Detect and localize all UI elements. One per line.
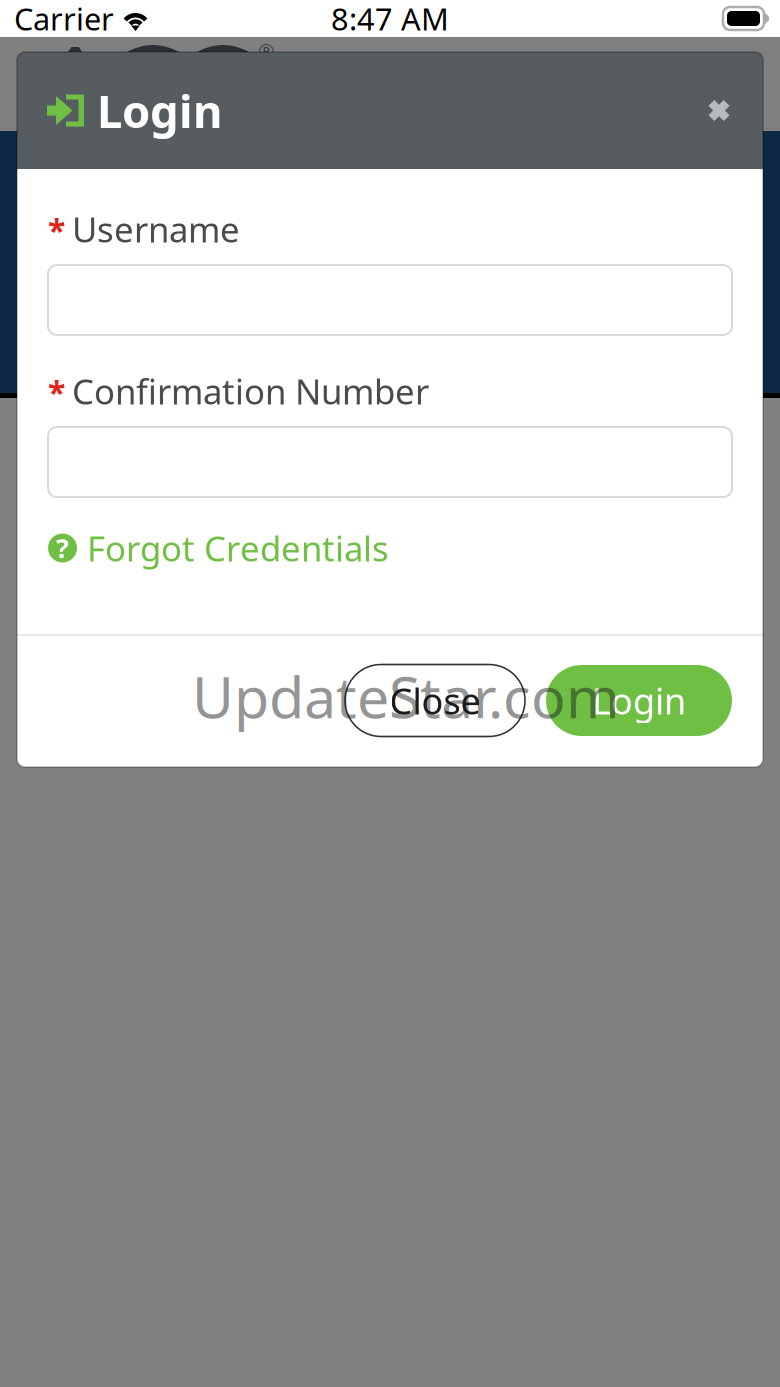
- staticText: Forgot Credentials: [87, 525, 389, 571]
- staticText: Confirmation Number: [72, 368, 429, 414]
- staticText: Login: [592, 677, 686, 724]
- staticText: *: [48, 209, 65, 251]
- staticText: ®: [258, 38, 275, 65]
- staticText: Username: [72, 206, 240, 252]
- button[interactable]: ?: [48, 528, 389, 568]
- button[interactable]: Close: [345, 664, 525, 736]
- button[interactable]: Login: [546, 665, 732, 736]
- staticText: Carrier: [14, 0, 114, 39]
- staticText: Login: [97, 80, 222, 141]
- staticText: ?: [56, 530, 69, 566]
- staticText: UpdateStar.com: [192, 658, 620, 734]
- button[interactable]: Close: [696, 87, 742, 133]
- staticText: Close: [389, 677, 480, 724]
- staticText: 8:47 AM: [331, 0, 449, 39]
- staticText: *: [48, 371, 65, 413]
